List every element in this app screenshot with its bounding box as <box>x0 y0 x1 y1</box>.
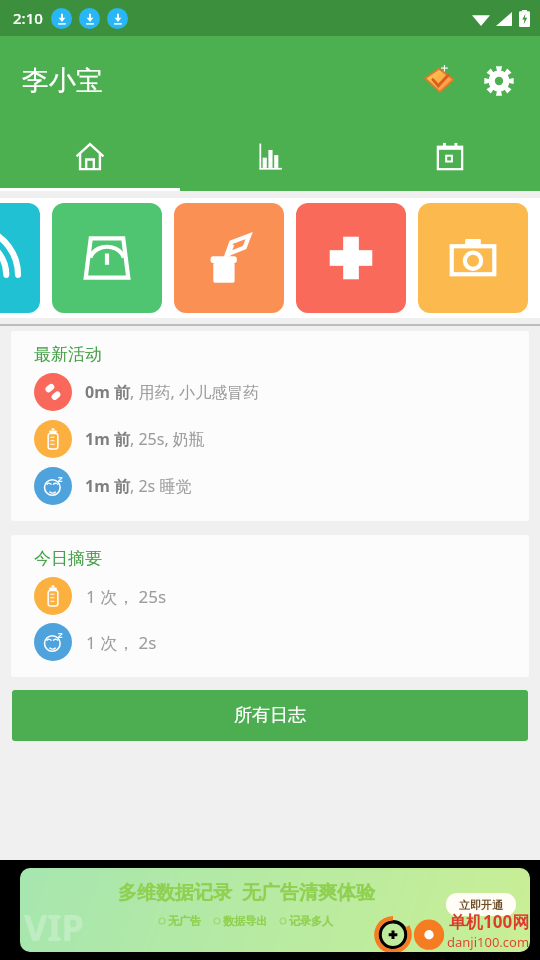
staticText: 多维数据记录 无广告清爽体验 <box>118 879 375 905</box>
staticText: 最新活动 <box>34 344 102 365</box>
button[interactable]: 1m 前 <box>34 467 515 505</box>
button[interactable]: Statistics <box>180 126 360 188</box>
button[interactable]: VIP <box>20 868 530 952</box>
staticText: danji100.com <box>447 933 530 951</box>
staticText: 2:10 <box>13 8 43 28</box>
button[interactable]: Rewards <box>416 58 462 104</box>
staticText: 今日摘要 <box>34 548 102 569</box>
staticText: 1m 前 <box>85 475 130 497</box>
button[interactable]: Weight <box>52 203 162 313</box>
button[interactable]: 立即开通 <box>446 893 516 916</box>
staticText: 无广告 <box>168 914 201 928</box>
staticText: 记录多人 <box>289 914 333 928</box>
button[interactable]: Pump <box>174 203 284 313</box>
button[interactable]: Home <box>0 126 180 188</box>
staticText: 所有日志 <box>234 704 306 727</box>
button[interactable]: 0m 前 <box>34 373 515 411</box>
staticText: 0m 前 <box>85 381 130 403</box>
button[interactable]: Calendar <box>360 126 540 188</box>
staticText: 数据导出 <box>223 914 267 928</box>
button[interactable]: 所有日志 <box>12 690 528 741</box>
button[interactable]: 1m 前 <box>34 420 515 458</box>
staticText: , 2s 睡觉 <box>130 475 192 497</box>
button[interactable]: Photo <box>418 203 528 313</box>
staticText: 立即开通 <box>459 898 503 912</box>
staticText: 1m 前 <box>85 428 130 450</box>
staticText: 单机100网 <box>449 910 530 933</box>
staticText: VIP <box>24 903 84 952</box>
button[interactable]: Nursing <box>0 203 40 313</box>
staticText: , 25s, 奶瓶 <box>130 428 205 450</box>
staticText: , 用药, 小儿感冒药 <box>130 381 259 403</box>
button[interactable]: Add <box>296 203 406 313</box>
staticText: 李小宝 <box>22 64 103 98</box>
button[interactable]: 1 次， 2s <box>34 623 515 661</box>
staticText: 1 次， 2s <box>86 631 157 654</box>
button[interactable]: Settings <box>476 58 522 104</box>
button[interactable]: 1 次， 25s <box>34 577 515 615</box>
staticText: 1 次， 25s <box>86 585 167 608</box>
